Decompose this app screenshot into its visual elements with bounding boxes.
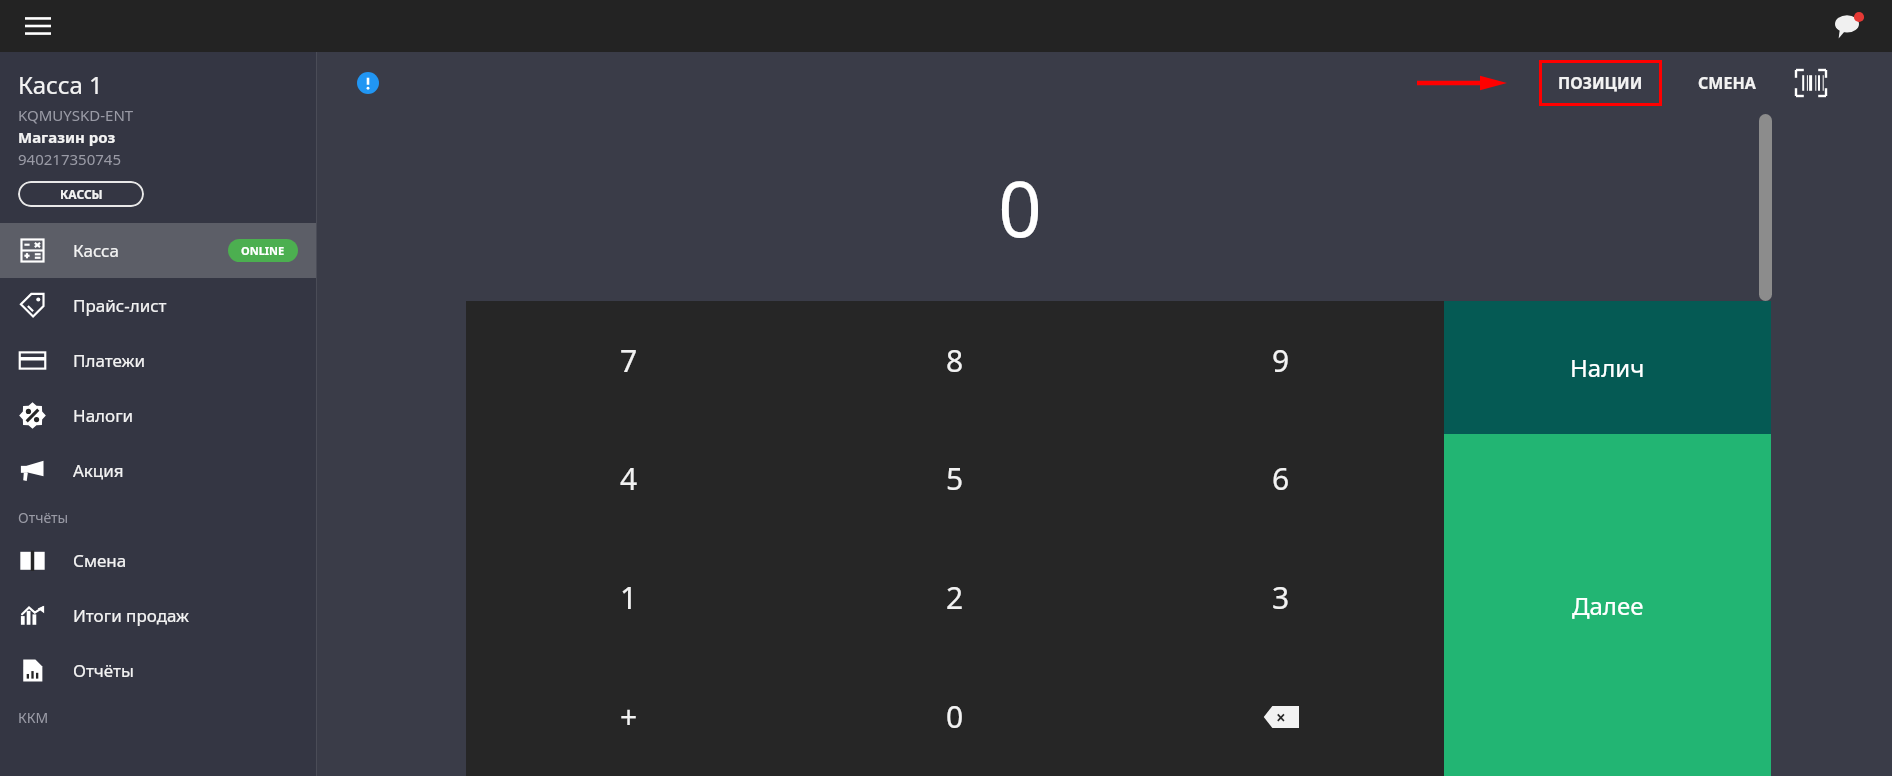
staticText: ККМ	[18, 708, 49, 727]
button[interactable]: 2	[792, 538, 1118, 657]
button[interactable]: 1	[466, 538, 792, 657]
button[interactable]: Отчёты	[0, 643, 316, 698]
button[interactable]: Info	[351, 66, 385, 100]
staticText: Итоги продаж	[73, 604, 190, 627]
staticText: 0	[998, 156, 1042, 260]
button[interactable]: 6	[1118, 419, 1444, 538]
button[interactable]: СМЕНА	[1688, 60, 1766, 106]
staticText: ONLINE	[241, 243, 285, 258]
staticText: СМЕНА	[1698, 72, 1756, 94]
button[interactable]: ×	[1118, 657, 1444, 776]
staticText: Акция	[73, 459, 124, 482]
staticText: 940217350745	[18, 149, 121, 169]
button[interactable]: Прайс-лист	[0, 278, 316, 333]
staticText: Смена	[73, 549, 127, 572]
staticText: Налич	[1570, 351, 1645, 384]
staticText: +	[620, 696, 638, 737]
button[interactable]: 5	[792, 419, 1118, 538]
button[interactable]: Scan barcode	[1790, 62, 1832, 104]
button[interactable]: Смена	[0, 533, 316, 588]
button[interactable]: Chat	[1830, 6, 1870, 46]
button[interactable]: 0	[792, 657, 1118, 776]
button[interactable]: Итоги продаж	[0, 588, 316, 643]
button[interactable]: Акция	[0, 443, 316, 498]
button[interactable]: Налоги	[0, 388, 316, 443]
staticText: Отчёты	[73, 659, 134, 682]
staticText: 6	[1272, 458, 1290, 499]
staticText: КАССЫ	[60, 186, 103, 202]
staticText: 4	[620, 458, 638, 499]
staticText: Магазин роз	[18, 127, 116, 147]
staticText: 5	[946, 458, 964, 499]
button[interactable]: 3	[1118, 538, 1444, 657]
button[interactable]: ПОЗИЦИИ	[1539, 60, 1662, 106]
button[interactable]: Далее	[1444, 434, 1771, 776]
staticText: ПОЗИЦИИ	[1558, 72, 1643, 94]
staticText: 2	[946, 577, 964, 618]
staticText: 9	[1272, 340, 1290, 381]
button[interactable]: Касса	[0, 223, 316, 278]
staticText: 8	[946, 340, 964, 381]
staticText: ×	[1276, 706, 1286, 729]
staticText: Касса 1	[18, 68, 103, 101]
staticText: KQMUYSKD-ENT	[18, 105, 134, 125]
button[interactable]: 8	[792, 301, 1118, 419]
button[interactable]: 4	[466, 419, 792, 538]
button[interactable]: +	[466, 657, 792, 776]
button[interactable]: КАССЫ	[18, 181, 144, 207]
staticText: Платежи	[73, 349, 145, 372]
staticText: Налоги	[73, 404, 134, 427]
button[interactable]: 9	[1118, 301, 1444, 419]
staticText: Касса	[73, 239, 119, 262]
button[interactable]: 7	[466, 301, 792, 419]
staticText: 1	[620, 577, 638, 618]
staticText: Отчёты	[18, 508, 69, 527]
button[interactable]: Налич	[1444, 301, 1771, 434]
button[interactable]: Menu	[18, 6, 58, 46]
staticText: 0	[946, 696, 964, 737]
staticText: Далее	[1572, 589, 1644, 622]
button[interactable]: Платежи	[0, 333, 316, 388]
staticText: 3	[1272, 577, 1290, 618]
staticText: 7	[620, 340, 638, 381]
staticText: Прайс-лист	[73, 294, 167, 317]
